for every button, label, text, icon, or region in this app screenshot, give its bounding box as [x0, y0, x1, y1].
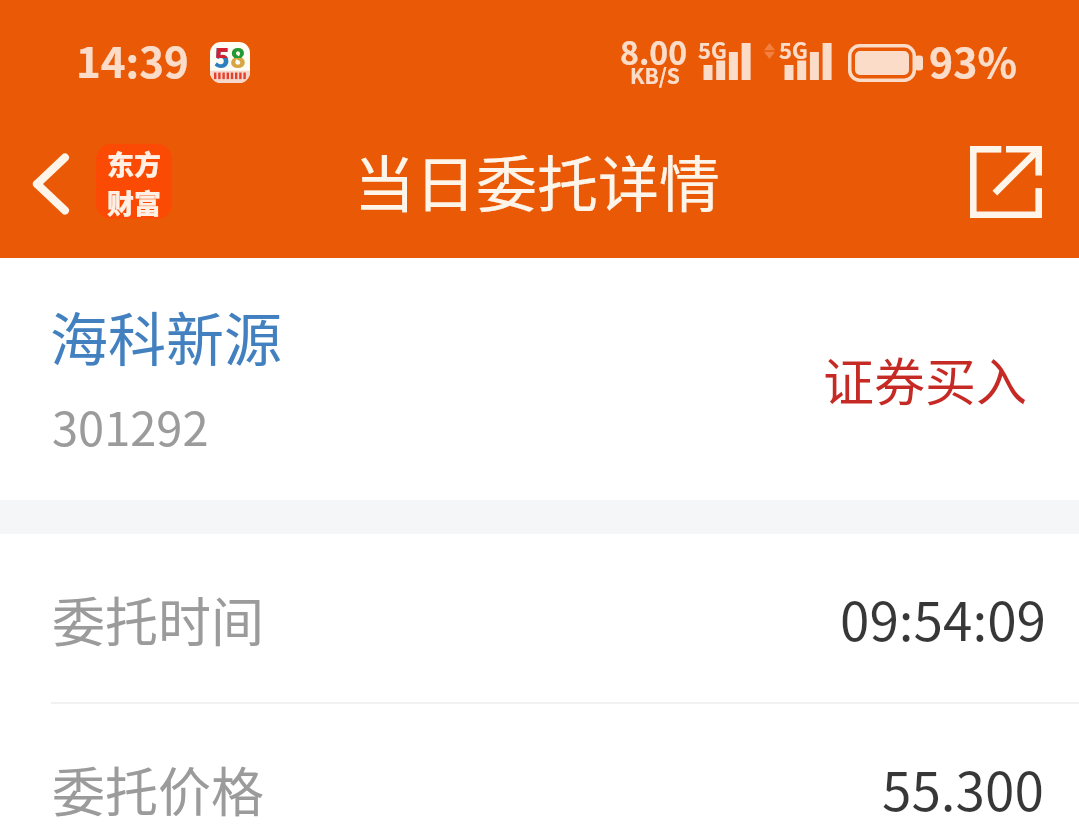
button[interactable]: Back — [20, 136, 82, 232]
button[interactable]: 委托时间 — [0, 534, 1079, 704]
button[interactable]: Share — [970, 146, 1042, 218]
staticText: 海科新源 — [50, 294, 283, 378]
staticText: 5G — [698, 33, 727, 65]
staticText: KB/S — [630, 60, 680, 90]
staticText: 8 — [230, 42, 246, 58]
staticText: 5 — [214, 42, 230, 58]
staticText: 东方 — [107, 144, 161, 183]
staticText: 14:39 — [76, 29, 189, 90]
staticText: 委托时间 — [52, 581, 264, 658]
button[interactable]: 委托价格 — [0, 704, 1079, 824]
staticText: 5 — [214, 42, 230, 76]
staticText: 8 — [230, 42, 246, 76]
staticText: 财富 — [107, 183, 161, 219]
staticText: 55.300 — [882, 750, 1044, 824]
staticText: 当日委托详情 — [354, 136, 721, 224]
button[interactable]: East Money home — [96, 144, 172, 219]
staticText: 8.00 — [620, 28, 688, 74]
staticText: 09:54:09 — [840, 580, 1046, 657]
staticText: 93% — [929, 30, 1017, 89]
staticText: 5G — [779, 33, 808, 65]
staticText: 301292 — [52, 391, 209, 459]
staticText: 证券买入 — [823, 342, 1028, 416]
staticText: 委托价格 — [52, 751, 264, 824]
